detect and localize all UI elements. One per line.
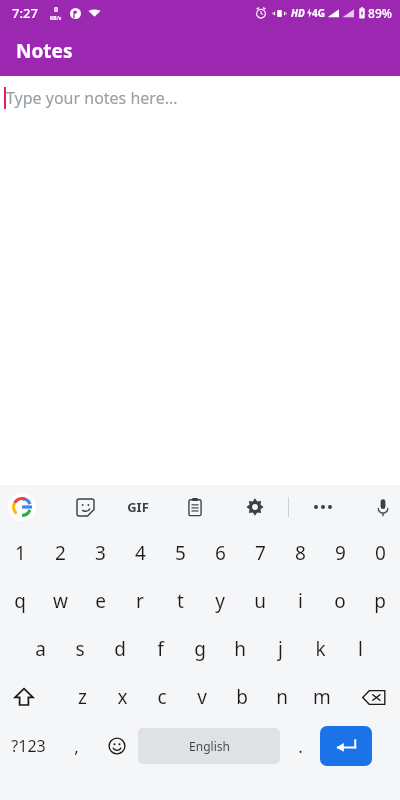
staticText: 89% — [368, 5, 392, 21]
button[interactable]: n — [262, 673, 302, 721]
staticText: u — [254, 588, 266, 614]
button[interactable]: 2 — [40, 529, 80, 577]
staticText: English — [189, 738, 230, 754]
button[interactable]: r — [120, 577, 160, 625]
button[interactable]: b — [222, 673, 262, 721]
button[interactable]: o — [320, 577, 360, 625]
staticText: HD — [291, 6, 305, 20]
button[interactable]: 7 — [240, 529, 280, 577]
button[interactable]: Backspace — [352, 673, 396, 721]
staticText: c — [157, 684, 167, 710]
staticText: q — [14, 588, 26, 614]
button[interactable]: k — [300, 625, 340, 673]
staticText: f — [157, 636, 164, 662]
staticText: 0 — [375, 540, 386, 566]
staticText: b — [236, 684, 248, 710]
button[interactable]: l — [340, 625, 380, 673]
button[interactable]: t — [160, 577, 200, 625]
staticText: 3 — [95, 540, 106, 566]
button[interactable]: c — [142, 673, 182, 721]
staticText: r — [136, 588, 144, 614]
button[interactable]: Settings — [240, 492, 270, 522]
button[interactable]: u — [240, 577, 280, 625]
button[interactable]: g — [180, 625, 220, 673]
staticText: i — [298, 588, 303, 614]
button[interactable]: p — [360, 577, 400, 625]
staticText: d — [114, 636, 126, 662]
staticText: 7 — [255, 540, 266, 566]
staticText: GIF — [127, 498, 149, 516]
staticText: p — [374, 588, 386, 614]
button[interactable]: z — [62, 673, 102, 721]
staticText: a — [35, 636, 46, 662]
button[interactable]: x — [102, 673, 142, 721]
staticText: l — [358, 636, 363, 662]
button[interactable]: Clipboard — [180, 492, 210, 522]
button[interactable]: h — [220, 625, 260, 673]
staticText: t — [177, 588, 184, 614]
staticText: 2 — [55, 540, 66, 566]
staticText: Type your notes here... — [6, 87, 178, 109]
staticText: m — [313, 684, 331, 710]
staticText: 7:27 — [12, 4, 38, 22]
button[interactable]: d — [100, 625, 140, 673]
button[interactable]: s — [60, 625, 100, 673]
button[interactable]: , — [56, 724, 96, 768]
staticText: KB/s — [50, 15, 62, 22]
button[interactable]: 5 — [160, 529, 200, 577]
staticText: h — [234, 636, 246, 662]
button[interactable]: a — [20, 625, 60, 673]
staticText: 4G — [312, 6, 325, 20]
button[interactable]: 8 — [280, 529, 320, 577]
staticText: , — [74, 735, 79, 758]
staticText: Notes — [16, 38, 73, 64]
button[interactable]: j — [260, 625, 300, 673]
button[interactable]: w — [40, 577, 80, 625]
button[interactable]: v — [182, 673, 222, 721]
staticText: x — [117, 684, 128, 710]
button[interactable]: GIF — [120, 492, 156, 522]
staticText: s — [75, 636, 85, 662]
staticText: g — [194, 636, 206, 662]
button[interactable]: Enter — [320, 726, 372, 766]
staticText: 1 — [15, 540, 26, 566]
button[interactable]: 0 — [360, 529, 400, 577]
staticText: 9 — [335, 540, 346, 566]
button[interactable]: 1 — [0, 529, 40, 577]
button[interactable]: f — [140, 625, 180, 673]
staticText: 4 — [135, 540, 146, 566]
button[interactable]: Emoji — [96, 724, 138, 768]
button[interactable]: More options — [308, 492, 338, 522]
staticText: 6 — [215, 540, 226, 566]
button[interactable]: Stickers — [70, 492, 100, 522]
button[interactable]: 4 — [120, 529, 160, 577]
staticText: n — [276, 684, 288, 710]
staticText: 8 — [295, 540, 306, 566]
button[interactable]: Voice input — [368, 492, 398, 522]
staticText: ?123 — [11, 735, 46, 757]
button[interactable]: Google — [8, 493, 36, 521]
button[interactable]: 3 — [80, 529, 120, 577]
staticText: v — [197, 684, 207, 710]
button[interactable]: 6 — [200, 529, 240, 577]
staticText: j — [278, 636, 283, 662]
button[interactable]: m — [302, 673, 342, 721]
staticText: y — [215, 588, 225, 614]
staticText: w — [53, 588, 68, 614]
staticText: k — [315, 636, 326, 662]
staticText: 5 — [175, 540, 186, 566]
staticText: e — [95, 588, 106, 614]
button[interactable]: i — [280, 577, 320, 625]
button[interactable]: q — [0, 577, 40, 625]
staticText: 0 — [54, 5, 59, 15]
button[interactable]: 9 — [320, 529, 360, 577]
button[interactable]: Shift — [0, 673, 48, 721]
button[interactable]: y — [200, 577, 240, 625]
button[interactable]: ?123 — [0, 724, 56, 768]
staticText: z — [78, 684, 87, 710]
button[interactable]: English — [138, 728, 280, 764]
staticText: . — [298, 735, 303, 758]
button[interactable]: e — [80, 577, 120, 625]
button[interactable]: . — [280, 724, 320, 768]
staticText: o — [334, 588, 346, 614]
